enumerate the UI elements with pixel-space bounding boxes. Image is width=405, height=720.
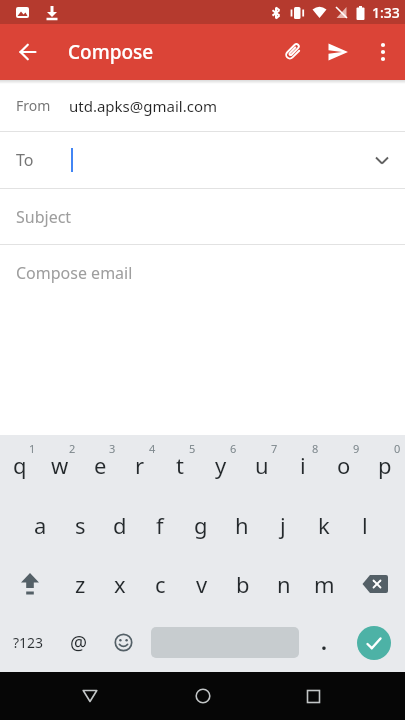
staticText: z — [75, 569, 86, 599]
button[interactable]: r — [120, 435, 160, 495]
staticText: @ — [70, 630, 88, 656]
staticText: u — [255, 450, 269, 480]
button[interactable] — [101, 613, 145, 672]
button[interactable]: o — [323, 435, 364, 495]
staticText: ?123 — [13, 633, 44, 652]
button[interactable]: t — [160, 435, 200, 495]
staticText: h — [235, 510, 249, 540]
button[interactable]: h — [221, 495, 262, 554]
staticText: 2 — [69, 441, 76, 456]
button[interactable]: u — [241, 435, 282, 495]
button[interactable]: g — [180, 495, 221, 554]
button[interactable]: . — [305, 613, 343, 672]
staticText: s — [75, 510, 86, 540]
button[interactable]: To — [0, 132, 405, 188]
staticText: To — [16, 149, 34, 171]
staticText: m — [314, 569, 335, 599]
button[interactable]: w — [40, 435, 80, 495]
staticText: w — [51, 450, 69, 480]
button[interactable]: y — [200, 435, 241, 495]
button[interactable] — [0, 554, 60, 613]
button[interactable]: s — [60, 495, 100, 554]
button[interactable] — [361, 24, 405, 80]
button[interactable]: l — [344, 495, 385, 554]
staticText: i — [300, 450, 306, 480]
staticText: j — [280, 510, 286, 540]
staticText: y — [215, 450, 227, 480]
button[interactable]: n — [263, 554, 304, 613]
staticText: 6 — [230, 441, 237, 456]
staticText: t — [176, 450, 184, 480]
staticText: c — [155, 569, 166, 599]
button[interactable] — [269, 24, 315, 80]
button[interactable] — [187, 680, 219, 712]
staticText: o — [337, 450, 351, 480]
staticText: d — [113, 510, 127, 540]
staticText: a — [34, 510, 47, 540]
staticText: p — [378, 450, 392, 480]
button[interactable] — [315, 24, 361, 80]
staticText: q — [13, 450, 27, 480]
button[interactable]: v — [181, 554, 222, 613]
staticText: Subject — [16, 206, 72, 228]
button[interactable]: e — [80, 435, 120, 495]
staticText: 0 — [394, 441, 401, 456]
button[interactable]: z — [60, 554, 100, 613]
staticText: v — [196, 569, 208, 599]
staticText: 9 — [353, 441, 360, 456]
staticText: b — [236, 569, 250, 599]
button[interactable] — [74, 680, 106, 712]
button[interactable]: Subject — [0, 189, 405, 244]
staticText: Compose email — [16, 262, 133, 284]
staticText: 1 — [29, 441, 36, 456]
button[interactable]: @ — [56, 613, 101, 672]
button[interactable] — [357, 626, 391, 660]
button[interactable]: k — [303, 495, 344, 554]
button[interactable]: From — [0, 80, 405, 131]
staticText: . — [321, 628, 327, 657]
staticText: f — [156, 510, 164, 540]
button[interactable]: ?123 — [0, 613, 56, 672]
button[interactable] — [0, 24, 56, 80]
staticText: g — [194, 510, 208, 540]
staticText: Compose — [68, 39, 154, 65]
staticText: e — [94, 450, 107, 480]
button[interactable]: j — [262, 495, 303, 554]
button[interactable]: c — [140, 554, 181, 613]
button[interactable]: d — [100, 495, 140, 554]
staticText: From — [16, 96, 51, 115]
staticText: 1:33 — [372, 3, 400, 22]
staticText: l — [362, 510, 368, 540]
button[interactable]: f — [140, 495, 180, 554]
button[interactable]: m — [304, 554, 345, 613]
staticText: r — [135, 450, 145, 480]
button[interactable] — [345, 554, 405, 613]
button[interactable]: p — [364, 435, 405, 495]
staticText: n — [277, 569, 291, 599]
staticText: k — [318, 510, 330, 540]
button[interactable] — [297, 680, 329, 712]
button[interactable]: x — [100, 554, 140, 613]
button[interactable]: q — [0, 435, 40, 495]
button[interactable] — [343, 613, 405, 672]
staticText: 4 — [149, 441, 156, 456]
staticText: 7 — [271, 441, 278, 456]
staticText: x — [114, 569, 126, 599]
button[interactable]: Compose email — [0, 245, 405, 300]
staticText: 5 — [189, 441, 196, 456]
button[interactable]: b — [222, 554, 263, 613]
staticText: 8 — [312, 441, 319, 456]
button[interactable]: a — [20, 495, 60, 554]
button[interactable]: i — [282, 435, 323, 495]
staticText: 3 — [109, 441, 116, 456]
staticText: utd.apks@gmail.com — [69, 96, 217, 116]
